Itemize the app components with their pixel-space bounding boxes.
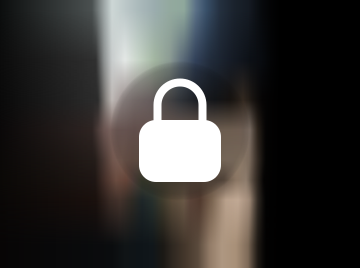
button[interactable]: Locked: [0, 0, 360, 268]
